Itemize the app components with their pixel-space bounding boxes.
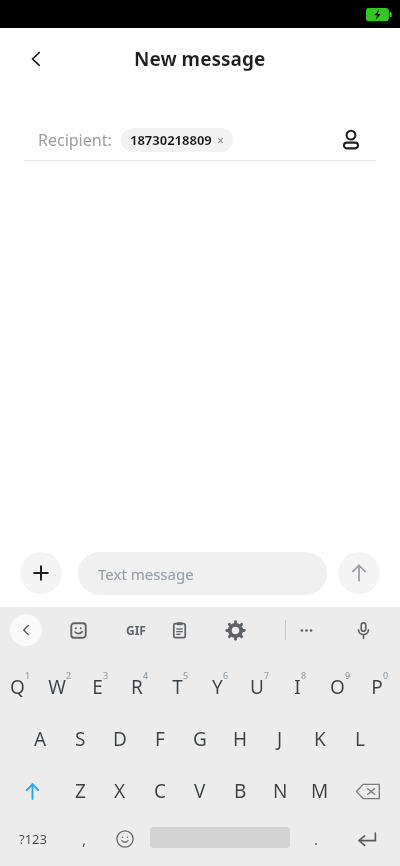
staticText: E <box>92 674 103 700</box>
staticText: 2 <box>66 669 72 681</box>
staticText: Z <box>75 778 86 804</box>
button[interactable]: Enter <box>344 817 390 861</box>
button[interactable]: O <box>320 663 360 711</box>
button[interactable]: R <box>120 663 160 711</box>
staticText: J <box>277 726 283 752</box>
staticText: V <box>194 778 206 804</box>
staticText: L <box>355 726 365 752</box>
button[interactable]: Backspace <box>346 767 390 815</box>
button[interactable]: U <box>240 663 280 711</box>
button[interactable]: H <box>220 715 260 763</box>
button[interactable]: Q <box>0 663 40 711</box>
button[interactable]: V <box>180 767 220 815</box>
staticText: 1 <box>25 669 31 681</box>
button[interactable]: Y <box>200 663 240 711</box>
button[interactable]: . <box>296 817 336 861</box>
button[interactable]: A <box>20 715 60 763</box>
button[interactable]: W <box>40 663 80 711</box>
button[interactable]: , <box>64 817 104 861</box>
button[interactable]: S <box>60 715 100 763</box>
button[interactable]: I <box>280 663 320 711</box>
staticText: 5 <box>183 669 189 681</box>
button[interactable]: B <box>220 767 260 815</box>
staticText: T <box>172 674 183 700</box>
button[interactable]: L <box>340 715 380 763</box>
button[interactable]: Settings <box>218 607 252 653</box>
staticText: GIF <box>126 622 146 638</box>
button[interactable]: Emoji <box>105 817 145 861</box>
staticText: U <box>250 674 264 700</box>
staticText: Text message <box>98 564 194 584</box>
button[interactable]: K <box>300 715 340 763</box>
button[interactable]: Send <box>338 552 380 594</box>
button[interactable]: X <box>100 767 140 815</box>
button[interactable]: P <box>360 663 400 711</box>
staticText: N <box>273 778 288 804</box>
button[interactable]: F <box>140 715 180 763</box>
staticText: W <box>48 674 66 700</box>
staticText: M <box>311 778 329 804</box>
staticText: ?123 <box>19 830 47 848</box>
staticText: D <box>113 726 127 752</box>
button[interactable]: Back <box>14 37 58 81</box>
button[interactable]: Add attachment <box>20 552 62 594</box>
staticText: R <box>131 674 143 700</box>
staticText: O <box>330 674 345 700</box>
staticText: 6 <box>223 669 229 681</box>
staticText: C <box>154 778 167 804</box>
staticText: 3 <box>103 669 109 681</box>
staticText: New message <box>134 46 266 72</box>
button[interactable]: 18730218809 <box>121 128 233 152</box>
staticText: B <box>234 778 247 804</box>
staticText: P <box>371 674 383 700</box>
button[interactable]: Text message <box>78 552 327 595</box>
button[interactable]: Choose contact <box>332 121 370 159</box>
staticText: K <box>314 726 326 752</box>
staticText: . <box>314 829 319 849</box>
staticText: Recipient: <box>38 129 112 151</box>
staticText: 4 <box>143 669 149 681</box>
button[interactable]: GIF <box>119 613 153 647</box>
staticText: Q <box>10 674 25 700</box>
button[interactable]: T <box>160 663 200 711</box>
staticText: 0 <box>383 669 389 681</box>
button[interactable]: More options <box>289 607 323 653</box>
button[interactable]: M <box>300 767 340 815</box>
staticText: 18730218809 <box>130 131 212 149</box>
button[interactable]: E <box>80 663 120 711</box>
button[interactable]: Voice input <box>346 607 380 653</box>
button[interactable]: D <box>100 715 140 763</box>
button[interactable]: Collapse toolbar <box>10 614 42 646</box>
button[interactable]: Shift <box>10 767 54 815</box>
staticText: × <box>217 132 224 148</box>
staticText: Y <box>212 674 223 700</box>
button[interactable]: N <box>260 767 300 815</box>
button[interactable]: Clipboard <box>162 607 196 653</box>
staticText: S <box>75 726 86 752</box>
button[interactable]: Stickers <box>61 607 95 653</box>
button[interactable]: J <box>260 715 300 763</box>
staticText: 9 <box>345 669 351 681</box>
staticText: 7 <box>264 669 270 681</box>
button[interactable]: ?123 <box>6 817 60 861</box>
button[interactable]: G <box>180 715 220 763</box>
staticText: G <box>193 726 207 752</box>
staticText: H <box>233 726 248 752</box>
staticText: X <box>114 778 126 804</box>
staticText: F <box>155 726 165 752</box>
staticText: A <box>34 726 47 752</box>
button[interactable]: C <box>140 767 180 815</box>
staticText: , <box>82 829 87 849</box>
staticText: I <box>294 674 301 700</box>
staticText: 8 <box>301 669 307 681</box>
button[interactable]: Z <box>60 767 100 815</box>
